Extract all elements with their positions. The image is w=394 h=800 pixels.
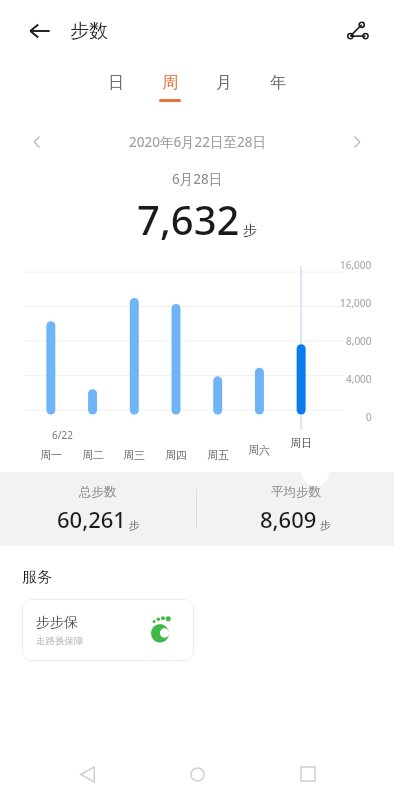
staticText: 2020年6月22日至28日 [129, 133, 266, 151]
button[interactable]: Back [18, 9, 62, 53]
button[interactable]: Previous week [20, 126, 54, 158]
button[interactable]: 日 [89, 65, 143, 109]
staticText: 走路换保障 [36, 635, 84, 647]
staticText: 4,000 [346, 372, 372, 386]
button[interactable]: Back [63, 750, 111, 798]
staticText: 周五 [207, 448, 229, 462]
staticText: 周三 [123, 448, 145, 462]
staticText: 步数 [70, 19, 108, 43]
staticText: 60,261 [57, 504, 126, 534]
staticText: 服务 [22, 568, 52, 587]
staticText: 周二 [82, 448, 104, 462]
staticText: 年 [270, 73, 286, 93]
staticText: 7,632 [137, 192, 240, 246]
staticText: 0 [366, 410, 372, 424]
button[interactable]: 步步保 [22, 599, 194, 661]
staticText: 周 [162, 73, 178, 93]
staticText: 总步数 [79, 484, 117, 500]
staticText: 周日 [290, 436, 312, 450]
staticText: 步 [243, 222, 257, 240]
staticText: 周四 [165, 448, 187, 462]
staticText: 步 [129, 518, 140, 532]
staticText: 6月28日 [172, 170, 223, 188]
button[interactable]: 周 [143, 65, 197, 109]
staticText: 6/22 [52, 428, 73, 442]
button[interactable]: Share [336, 10, 378, 52]
staticText: 周六 [248, 443, 270, 457]
button[interactable]: 总步数 [0, 484, 196, 534]
staticText: 12,000 [340, 296, 372, 310]
button[interactable]: 月 [197, 65, 251, 109]
staticText: 日 [108, 73, 124, 93]
button[interactable]: Next week [340, 126, 374, 158]
staticText: 周一 [40, 448, 62, 462]
button[interactable]: Recent apps [284, 750, 332, 798]
staticText: 8,000 [346, 334, 372, 348]
staticText: 月 [216, 73, 232, 93]
button[interactable]: Home [173, 750, 221, 798]
staticText: 步步保 [36, 614, 78, 632]
staticText: 平均步数 [271, 484, 321, 500]
staticText: 步 [320, 518, 331, 532]
button[interactable]: 平均步数 [197, 484, 394, 534]
staticText: 8,609 [260, 504, 317, 534]
staticText: 16,000 [340, 258, 372, 272]
button[interactable]: 年 [251, 65, 305, 109]
